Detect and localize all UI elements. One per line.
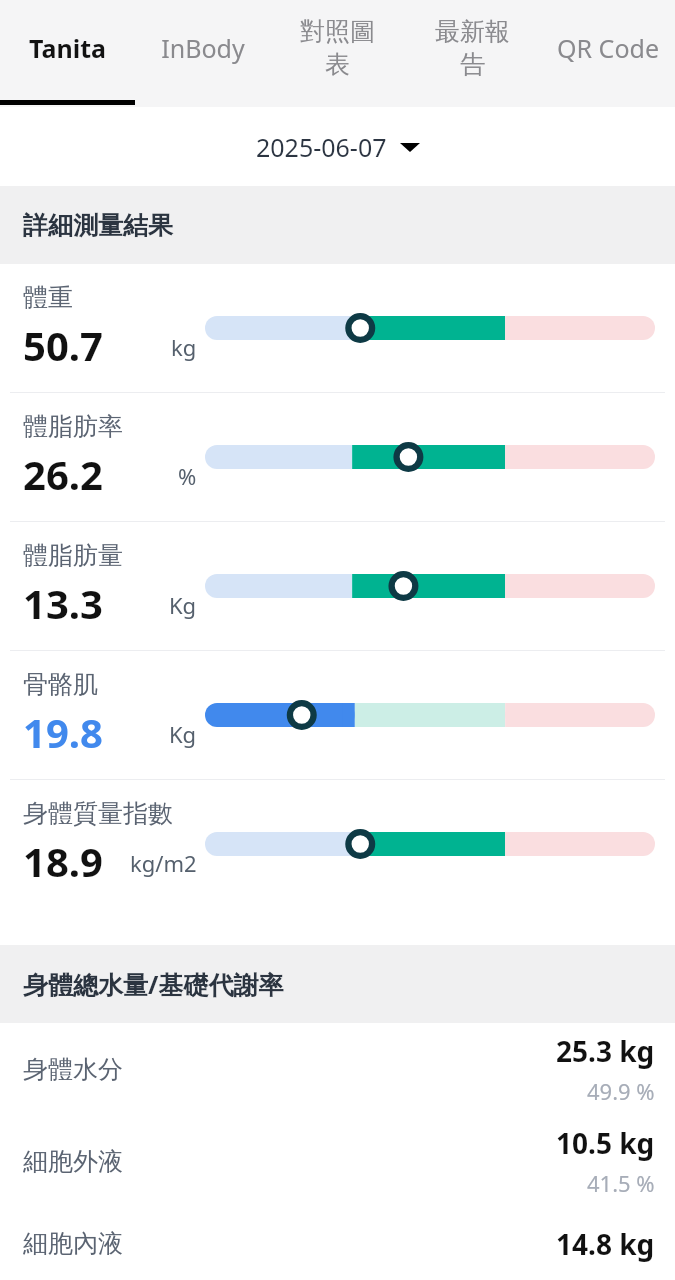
button[interactable]: 細胞內液	[0, 1207, 675, 1280]
button[interactable]: 細胞外液	[0, 1115, 675, 1207]
staticText: 詳細測量結果	[23, 210, 173, 241]
staticText: 18.9	[23, 834, 103, 888]
staticText: 體脂肪量	[23, 540, 123, 571]
staticText: 26.2	[23, 447, 103, 501]
button[interactable]: Tanita	[0, 0, 135, 107]
staticText: 骨骼肌	[23, 669, 98, 700]
staticText: 身體水分	[23, 1054, 123, 1085]
staticText: 細胞內液	[23, 1228, 123, 1259]
staticText: QR Code	[557, 31, 659, 65]
staticText: Tanita	[29, 31, 106, 65]
staticText: 最新報 告	[435, 16, 510, 80]
staticText: 體脂肪率	[23, 411, 123, 442]
button[interactable]: 骨骼肌	[0, 651, 675, 779]
button[interactable]: 身體水分	[0, 1023, 675, 1115]
button[interactable]: 體脂肪率	[0, 393, 675, 521]
staticText: 身體總水量/基礎代謝率	[23, 967, 284, 1001]
staticText: 49.9 %	[587, 1076, 655, 1106]
staticText: kg/m2	[130, 848, 197, 878]
staticText: 14.8 kg	[556, 1225, 655, 1263]
staticText: 對照圖 表	[300, 16, 375, 80]
staticText: 身體質量指數	[23, 798, 173, 829]
staticText: 體重	[23, 282, 73, 313]
button[interactable]: 體重	[0, 264, 675, 392]
staticText: 50.7	[23, 318, 103, 372]
button[interactable]: QR Code	[540, 0, 675, 107]
staticText: 25.3 kg	[556, 1032, 655, 1070]
button[interactable]: 身體質量指數	[0, 780, 675, 908]
button[interactable]: InBody	[135, 0, 270, 107]
staticText: 2025-06-07	[256, 130, 387, 164]
button[interactable]: 最新報 告	[405, 0, 540, 107]
button[interactable]: 2025-06-07	[244, 124, 432, 170]
staticText: 41.5 %	[587, 1168, 655, 1198]
button[interactable]: 對照圖 表	[270, 0, 405, 107]
staticText: kg	[171, 332, 197, 362]
staticText: Kg	[169, 590, 197, 620]
staticText: 19.8	[23, 705, 103, 759]
staticText: 13.3	[23, 576, 103, 630]
staticText: InBody	[161, 31, 245, 65]
other: Select date	[400, 140, 420, 154]
staticText: 10.5 kg	[556, 1124, 655, 1162]
staticText: %	[178, 461, 197, 491]
staticText: Kg	[169, 719, 197, 749]
staticText: 細胞外液	[23, 1146, 123, 1177]
button[interactable]: 體脂肪量	[0, 522, 675, 650]
